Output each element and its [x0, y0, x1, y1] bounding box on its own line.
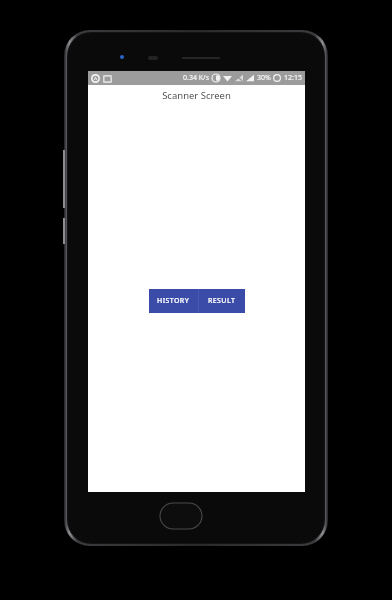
button[interactable]: HISTORY [149, 289, 198, 313]
button[interactable]: RESULT [199, 289, 245, 313]
staticText: Scanner Screen [88, 89, 305, 102]
button[interactable]: Home [160, 503, 202, 529]
staticText: HISTORY [157, 296, 190, 306]
staticText: RESULT [208, 296, 236, 306]
staticText: 0.34 K/s [183, 73, 209, 83]
staticText: 30% [257, 73, 271, 83]
staticText: 12:15 [284, 73, 302, 83]
